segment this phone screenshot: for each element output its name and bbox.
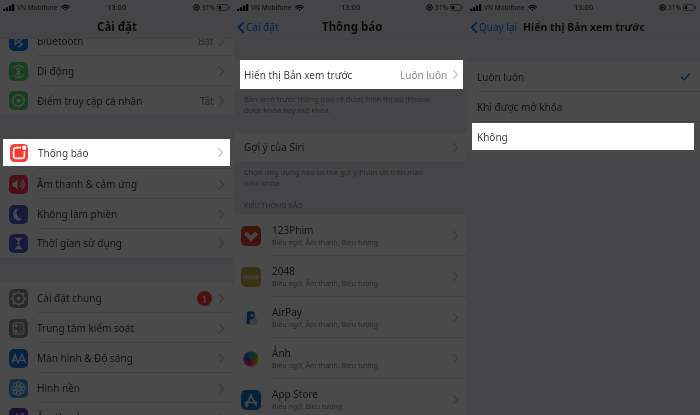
staticText: Thông báo	[322, 19, 383, 35]
staticText: Tắt	[200, 94, 214, 108]
staticText: Hiển thị Bản xem trước	[523, 20, 645, 34]
staticText: Điểm truy cập cá nhân	[37, 94, 143, 108]
staticText: Hiển thị Bản xem trước	[244, 68, 353, 82]
staticText: 31%	[435, 3, 448, 12]
button[interactable]: Thời gian sử dụng	[0, 229, 234, 257]
staticText: Thông báo	[37, 147, 88, 161]
staticText: Ảnh	[272, 346, 291, 360]
staticText: Âm thanh	[37, 410, 84, 415]
staticText: Âm thanh & cảm ứng	[37, 177, 138, 191]
button[interactable]: Điểm truy cập cá nhân	[0, 86, 234, 115]
button[interactable]: Không làm phiền	[0, 199, 234, 229]
staticText: 13:00	[574, 2, 594, 12]
staticText: 2048	[272, 264, 295, 278]
button[interactable]: Thông báo	[3, 139, 230, 166]
staticText: Luôn luôn	[400, 68, 448, 82]
staticText: Thông báo	[38, 146, 89, 160]
staticText: Hiển thị Bản xem trước	[244, 68, 353, 82]
button[interactable]: Di động	[0, 56, 234, 86]
button[interactable]: 2048	[234, 256, 467, 297]
button[interactable]: Hình nền	[0, 373, 234, 403]
button[interactable]: App Store	[234, 379, 467, 415]
staticText: Di động	[37, 64, 75, 78]
staticText: Cài đặt chung	[37, 291, 102, 305]
staticText: 13:00	[341, 2, 361, 12]
staticText: Thời gian sử dụng	[37, 236, 122, 250]
button[interactable]: Khi được mở khóa	[467, 92, 700, 122]
staticText: VN Mobifone	[17, 3, 58, 12]
button[interactable]: Thông báo	[0, 139, 234, 169]
button[interactable]: Hiển thị Bản xem trước	[234, 60, 467, 89]
staticText: Cài đặt	[246, 20, 279, 34]
staticText: Hình nền	[37, 381, 80, 395]
staticText: VN Mobifone	[251, 3, 292, 12]
staticText: Bản xem trước thông báo sẽ được hiển thị…	[244, 94, 431, 115]
button[interactable]: Cài đặt chung	[0, 283, 234, 313]
button[interactable]: Luôn luôn	[467, 62, 700, 92]
button[interactable]: Bluetooth	[0, 26, 234, 56]
staticText: 31%	[668, 3, 681, 12]
staticText: Trung tâm kiểm soát	[37, 321, 135, 335]
staticText: Biểu ngữ, Âm thanh, Biểu tượng	[272, 279, 379, 289]
staticText: Biểu ngữ, Âm thanh, Biểu tượng	[272, 320, 379, 330]
staticText: Luôn luôn	[400, 68, 448, 82]
button[interactable]: Không	[467, 122, 700, 152]
staticText: 123Phim	[272, 223, 314, 237]
staticText: Bật	[198, 34, 214, 48]
button[interactable]: Gợi ý của Siri	[234, 133, 467, 161]
staticText: 31%	[202, 3, 215, 12]
staticText: Không	[477, 130, 508, 144]
staticText: Màn hình & Độ sáng	[37, 351, 133, 365]
button[interactable]: Không	[472, 123, 694, 150]
staticText: Khi được mở khóa	[477, 100, 563, 114]
staticText: KIỂU THÔNG BÁO	[244, 201, 303, 211]
staticText: App Store	[272, 387, 319, 401]
staticText: 13:00	[107, 2, 127, 12]
staticText: Quay lại	[479, 20, 518, 34]
staticText: AirPay	[272, 305, 302, 319]
staticText: Cài đặt	[97, 19, 137, 35]
staticText: Biểu ngữ, Âm thanh, Biểu tượng	[272, 238, 379, 248]
staticText: Không	[477, 130, 508, 144]
button[interactable]: Trung tâm kiểm soát	[0, 313, 234, 343]
button[interactable]: Cài đặt	[234, 20, 283, 34]
button[interactable]: Màn hình & Độ sáng	[0, 343, 234, 373]
staticText: 1	[202, 293, 208, 305]
button[interactable]: Âm thanh	[0, 403, 234, 415]
button[interactable]: 123Phim	[234, 215, 467, 256]
staticText: Luôn luôn	[477, 70, 525, 84]
staticText: Biểu ngữ, Âm thanh, Biểu tượng	[272, 361, 379, 371]
button[interactable]: Âm thanh & cảm ứng	[0, 169, 234, 199]
button[interactable]: Quay lại	[467, 20, 522, 34]
staticText: Gợi ý của Siri	[244, 140, 305, 154]
staticText: Chọn ứng dụng nào có thể gợi ý Phím tắt …	[244, 167, 423, 188]
staticText: Bluetooth	[37, 34, 84, 48]
button[interactable]: Hiển thị Bản xem trước	[240, 60, 463, 89]
button[interactable]: Ảnh	[234, 338, 467, 379]
button[interactable]: AirPay	[234, 297, 467, 338]
staticText: Không làm phiền	[37, 207, 118, 221]
staticText: VN Mobifone	[484, 3, 525, 12]
staticText: Biểu ngữ, Biểu tượng	[272, 402, 343, 412]
